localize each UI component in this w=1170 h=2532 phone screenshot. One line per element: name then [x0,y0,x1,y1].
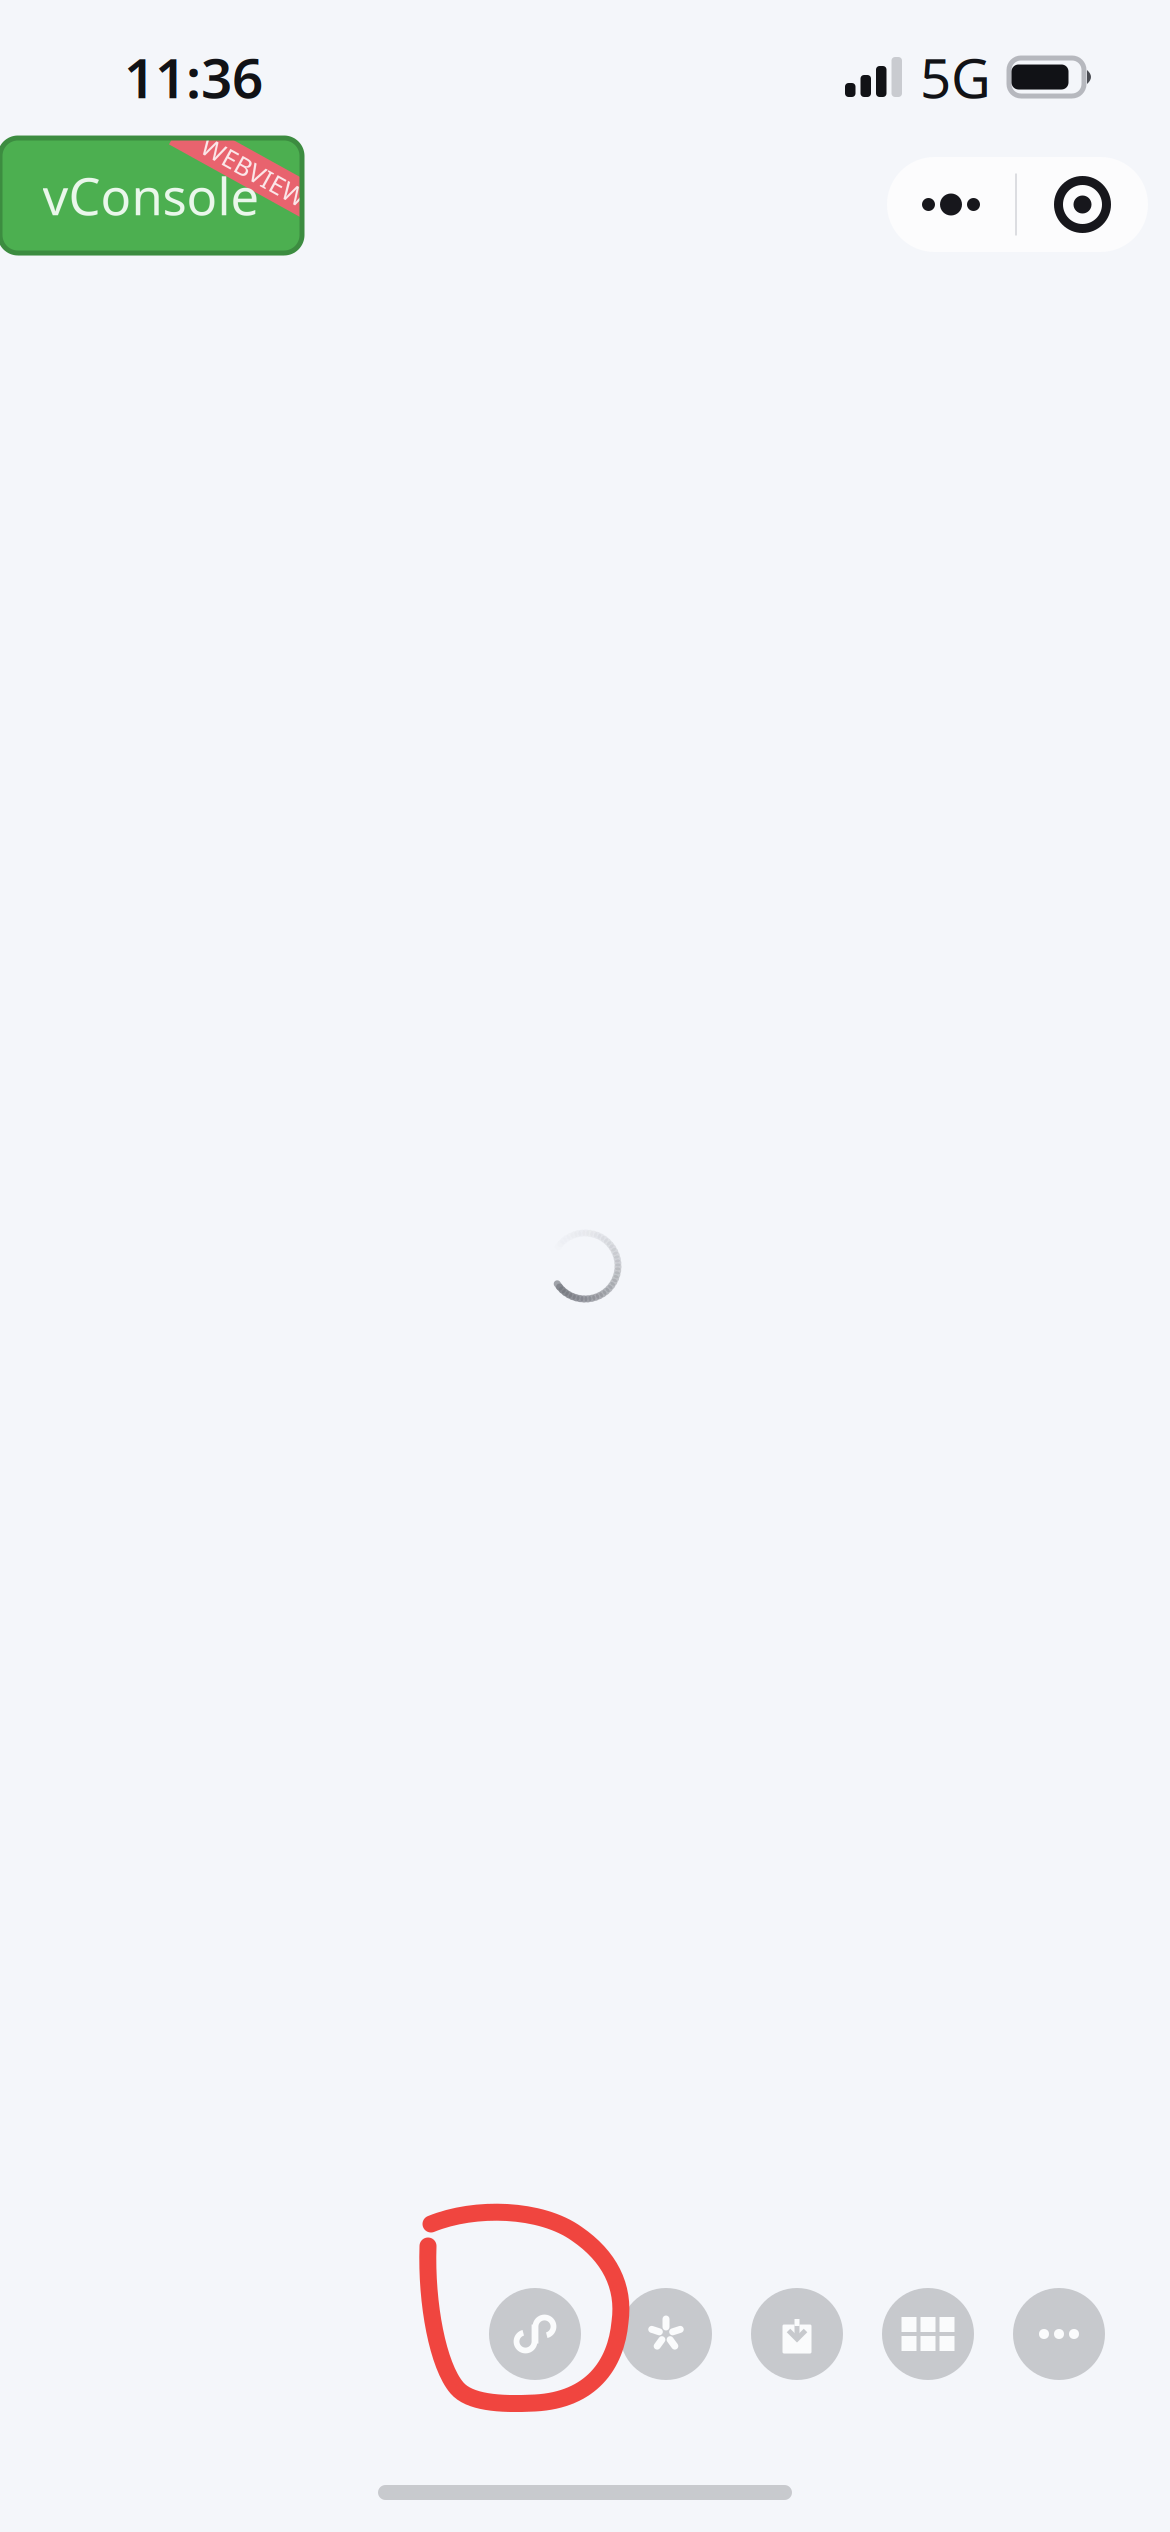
staticText: vConsole [42,162,259,229]
staticText: 11:36 [124,41,263,113]
button[interactable]: vConsole [0,138,302,253]
staticText: 5G [920,41,991,113]
button[interactable]: Apps [882,2288,974,2380]
button[interactable]: Mini program [489,2288,581,2380]
button[interactable]: Close mini program [1017,157,1148,252]
button[interactable]: More options [887,157,1015,252]
button[interactable]: Download [751,2288,843,2380]
staticText: WEBVIEW [196,155,312,188]
button[interactable]: Favourites [620,2288,712,2380]
button[interactable]: More [1013,2288,1105,2380]
